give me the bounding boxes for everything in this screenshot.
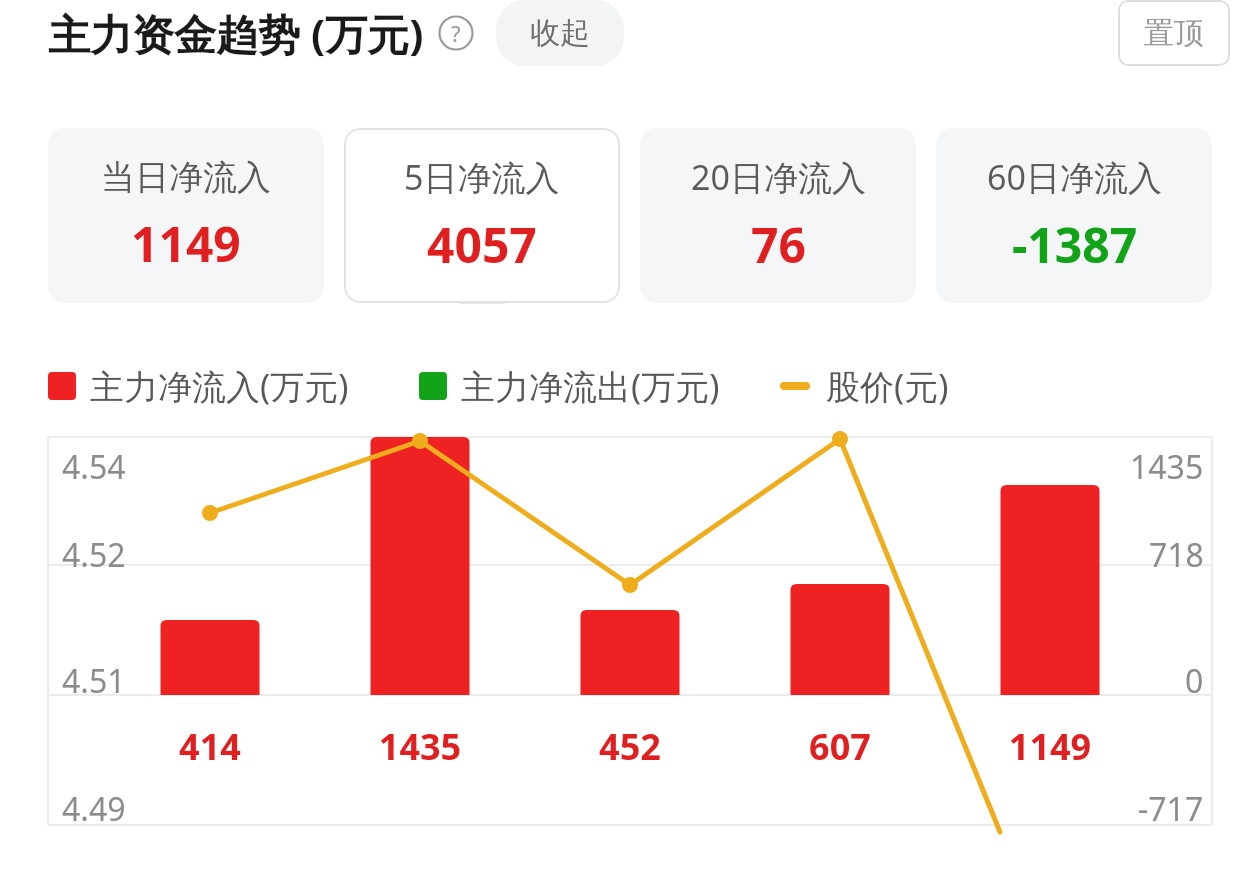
button[interactable]: 当日净流入 — [48, 128, 324, 303]
staticText: 5日净流入 — [404, 154, 560, 200]
staticText: 1149 — [131, 211, 241, 276]
staticText: 当日净流入 — [101, 156, 271, 199]
staticText: 收起 — [530, 14, 590, 52]
staticText: 0 — [1185, 659, 1204, 703]
button[interactable]: 帮助说明 — [438, 15, 474, 51]
staticText: 60日净流入 — [987, 154, 1162, 200]
staticText: 主力净流出(万元) — [461, 363, 720, 409]
button[interactable]: 60日净流入 — [936, 128, 1212, 303]
staticText: ? — [451, 18, 461, 48]
staticText: 1149 — [990, 722, 1110, 771]
staticText: 4.54 — [62, 445, 126, 489]
staticText: 股价(元) — [826, 363, 949, 409]
staticText: 主力净流入(万元) — [90, 363, 349, 409]
staticText: 4.49 — [62, 787, 126, 831]
staticText: 4.52 — [62, 533, 126, 577]
button[interactable]: 20日净流入 — [640, 128, 916, 303]
staticText: 452 — [570, 722, 690, 771]
staticText: 20日净流入 — [691, 154, 866, 200]
button[interactable]: 置顶 — [1118, 0, 1230, 66]
staticText: 主力资金趋势 (万元) — [48, 5, 424, 62]
button[interactable]: 5日净流入 — [344, 128, 620, 303]
staticText: 4.51 — [62, 659, 126, 703]
button[interactable]: 收起 — [496, 0, 624, 66]
staticText: 1435 — [1130, 445, 1204, 489]
staticText: 4057 — [427, 212, 537, 277]
staticText: 76 — [751, 212, 806, 277]
staticText: 置顶 — [1144, 14, 1204, 52]
staticText: -717 — [1138, 787, 1204, 831]
staticText: -1387 — [1012, 212, 1138, 277]
staticText: 1435 — [360, 722, 480, 771]
staticText: 718 — [1149, 533, 1204, 577]
staticText: 414 — [150, 722, 270, 771]
staticText: 607 — [780, 722, 900, 771]
